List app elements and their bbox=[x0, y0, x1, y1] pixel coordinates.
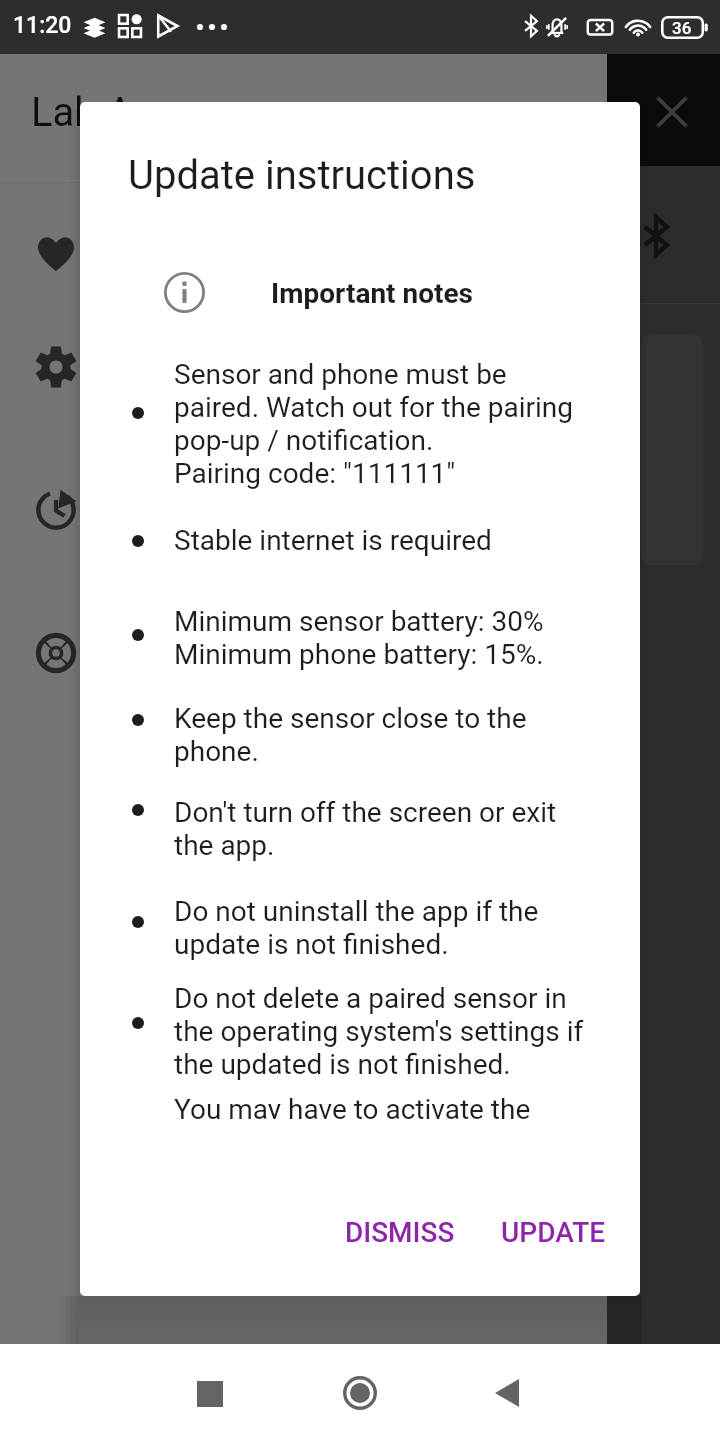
staticText: You may have to activate the bbox=[174, 1093, 531, 1119]
staticText: Sensor and phone must be bbox=[174, 358, 507, 391]
button[interactable]: Recents bbox=[162, 1346, 258, 1440]
staticText: Keep the sensor close to the bbox=[174, 702, 527, 735]
staticText: Do not uninstall the app if the bbox=[174, 895, 539, 928]
other: Information bbox=[164, 272, 205, 313]
staticText: the app. bbox=[174, 829, 275, 862]
button[interactable]: Back bbox=[459, 1345, 555, 1440]
staticText: 36 bbox=[672, 18, 692, 38]
staticText: phone. bbox=[174, 735, 259, 768]
staticText: Minimum sensor battery: 30% bbox=[174, 605, 544, 638]
staticText: the operating system's settings if bbox=[174, 1015, 584, 1048]
staticText: pop-up / notification. bbox=[174, 424, 434, 457]
staticText: Important notes bbox=[271, 277, 474, 310]
staticText: 11:20 bbox=[13, 12, 72, 39]
staticText: Do not delete a paired sensor in bbox=[174, 982, 567, 1015]
staticText: Stable internet is required bbox=[174, 524, 492, 557]
staticText: Don't turn off the screen or exit bbox=[174, 796, 557, 829]
staticText: Update instructions bbox=[128, 152, 476, 199]
staticText: the updated is not finished. bbox=[174, 1048, 511, 1081]
staticText: DISMISS bbox=[345, 1216, 455, 1249]
other: Close bbox=[652, 92, 692, 132]
button[interactable]: DISMISS bbox=[327, 1204, 473, 1261]
button[interactable]: Home bbox=[312, 1345, 408, 1440]
button[interactable]: UPDATE bbox=[483, 1204, 624, 1261]
staticText: UPDATE bbox=[501, 1216, 606, 1249]
staticText: Pairing code: "111111" bbox=[174, 457, 456, 490]
staticText: Minimum phone battery: 15%. bbox=[174, 638, 544, 671]
staticText: paired. Watch out for the pairing bbox=[174, 391, 574, 424]
staticText: Lab App bbox=[31, 89, 178, 136]
staticText: update is not finished. bbox=[174, 928, 449, 961]
